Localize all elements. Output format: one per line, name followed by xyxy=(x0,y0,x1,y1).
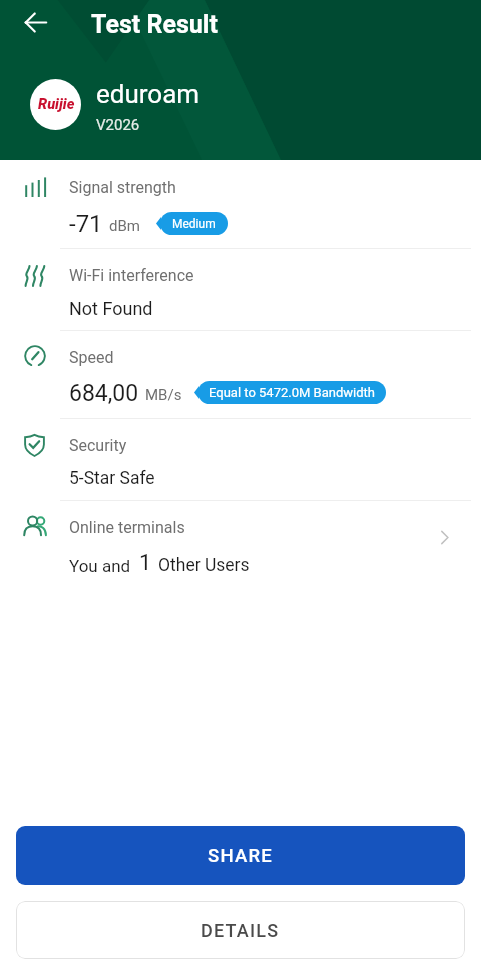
staticText: Not Found xyxy=(69,298,153,319)
staticText: dBm xyxy=(109,217,140,235)
button[interactable]: Signal strength xyxy=(0,160,481,248)
staticText: Equal to 5472.0M Bandwidth xyxy=(209,385,375,400)
staticText: DETAILS xyxy=(201,920,280,941)
button[interactable]: Online terminals xyxy=(0,500,481,585)
staticText: Online terminals xyxy=(69,518,185,537)
staticText: You and xyxy=(69,556,131,576)
staticText: Medium xyxy=(172,217,216,231)
staticText: 684,00 xyxy=(69,380,139,407)
staticText: 1 xyxy=(139,550,152,576)
staticText: Test Result xyxy=(91,10,218,39)
staticText: Wi-Fi interference xyxy=(69,266,194,285)
staticText: Speed xyxy=(69,348,114,367)
staticText: Signal strength xyxy=(69,178,176,197)
staticText: MB/s xyxy=(145,386,182,404)
button[interactable]: Back xyxy=(11,0,59,46)
button[interactable]: Show online terminals xyxy=(429,522,459,552)
button[interactable]: Security xyxy=(0,418,481,500)
staticText: eduroam xyxy=(96,79,200,109)
staticText: -71 xyxy=(69,210,103,238)
staticText: Ruijie xyxy=(38,96,75,113)
staticText: Security xyxy=(69,436,127,455)
button[interactable]: SHARE xyxy=(16,826,465,885)
staticText: V2026 xyxy=(96,116,140,134)
button[interactable]: DETAILS xyxy=(16,901,465,959)
staticText: SHARE xyxy=(208,845,274,867)
button[interactable]: Wi-Fi interference xyxy=(0,248,481,330)
staticText: Other Users xyxy=(158,555,250,576)
staticText: 5-Star Safe xyxy=(69,468,155,489)
button[interactable]: Speed xyxy=(0,330,481,418)
